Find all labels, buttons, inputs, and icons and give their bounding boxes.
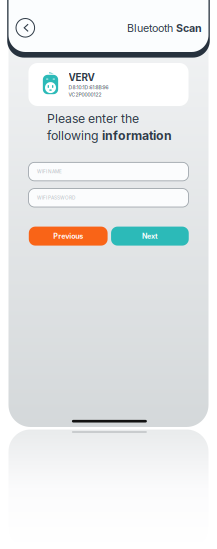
button[interactable]: WIFI NAME (28, 162, 188, 181)
staticText: Please enter the (47, 111, 139, 126)
staticText: D8:10:1D:61:8B:96 (68, 84, 108, 90)
button[interactable]: WIFI PASSWORD (28, 189, 188, 207)
staticText: VC2P0000122 (68, 92, 101, 98)
staticText: WIFI NAME (37, 169, 62, 174)
button[interactable]: Bluetooth (127, 22, 202, 35)
staticText: Previous (53, 232, 83, 240)
staticText: information (102, 128, 172, 143)
button[interactable]: Previous (29, 227, 108, 246)
staticText: Next (142, 232, 158, 240)
staticText: following (47, 128, 102, 143)
staticText: Bluetooth (127, 22, 176, 35)
button[interactable]: Back (12, 15, 38, 41)
button[interactable]: Next (111, 227, 189, 246)
staticText: VERV (68, 71, 94, 83)
staticText: Scan (176, 22, 202, 35)
staticText: WIFI PASSWORD (37, 195, 75, 201)
